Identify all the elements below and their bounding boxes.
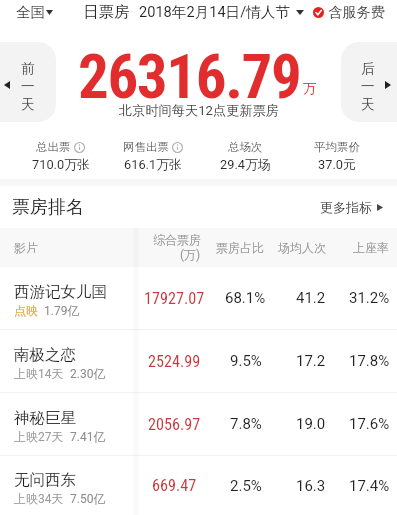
staticText: 41.2	[296, 289, 326, 307]
staticText: 场均人次	[278, 240, 326, 255]
staticText: 天	[361, 96, 375, 113]
staticText: 票房占比	[216, 240, 264, 255]
button[interactable]: 前一天	[0, 42, 56, 122]
staticText: 669.47	[152, 476, 197, 495]
staticText: 2056.97	[148, 415, 201, 434]
staticText: 17.2	[296, 352, 326, 370]
staticText: 29.4万场	[220, 157, 271, 173]
staticText: 万	[303, 80, 317, 97]
staticText: 票房排名	[12, 196, 84, 219]
staticText: 上映14天	[14, 366, 64, 381]
staticText: 17.8%	[349, 352, 390, 370]
button[interactable]: 全国	[16, 3, 53, 21]
staticText: 17.4%	[349, 477, 390, 495]
button[interactable]: 神秘巨星	[0, 393, 397, 455]
staticText: 西游记女儿国	[14, 282, 107, 302]
staticText: 无问西东	[14, 470, 76, 490]
staticText: 710.0万张	[32, 157, 90, 173]
staticText: 上座率	[353, 240, 389, 255]
staticText: 后	[361, 60, 375, 77]
button[interactable]: 网售出票	[107, 132, 199, 173]
staticText: 北京时间每天12点更新票房	[119, 102, 279, 119]
staticText: 综合票房	[153, 232, 201, 247]
button[interactable]: 南极之恋	[0, 330, 397, 392]
staticText: 7.50亿	[70, 491, 106, 506]
staticText: 616.1万张	[124, 157, 182, 173]
staticText: 1.79亿	[44, 303, 80, 318]
staticText: 19.0	[296, 415, 326, 433]
staticText: 南极之恋	[14, 345, 76, 365]
staticText: 影片	[14, 240, 38, 255]
staticText: 上映27天	[14, 429, 64, 444]
staticText: 全国	[16, 3, 45, 21]
staticText: 总出票	[36, 140, 71, 154]
staticText: 天	[21, 96, 35, 113]
button[interactable]: 平均票价	[291, 132, 383, 173]
staticText: 9.5%	[230, 352, 262, 370]
staticText: 平均票价	[314, 140, 360, 154]
button[interactable]: 2018年2月14日/情人节	[139, 3, 304, 21]
staticText: 一	[21, 78, 35, 95]
button[interactable]: 日票房	[83, 2, 130, 22]
staticText: 2.5%	[230, 477, 262, 495]
staticText: 网售出票	[123, 140, 169, 154]
staticText: 7.8%	[230, 415, 262, 433]
staticText: 总场次	[228, 140, 263, 154]
staticText: 更多指标	[320, 199, 372, 215]
staticText: 7.41亿	[70, 429, 106, 444]
staticText: 17.6%	[349, 415, 390, 433]
staticText: 一	[361, 78, 375, 95]
button[interactable]: 后一天	[341, 42, 397, 122]
button[interactable]: 无问西东	[0, 456, 397, 515]
button[interactable]: 总场次	[199, 132, 291, 173]
staticText: 点映	[14, 303, 38, 318]
button[interactable]: 更多指标	[320, 199, 383, 215]
staticText: 31.2%	[349, 289, 390, 307]
staticText: 2524.99	[148, 352, 201, 371]
staticText: 2.30亿	[70, 366, 106, 381]
button[interactable]: 含服务费	[313, 3, 385, 21]
staticText: 26316.79	[78, 41, 301, 112]
staticText: 前	[21, 60, 35, 77]
button[interactable]: 西游记女儿国	[0, 267, 397, 329]
other: 含服务费	[313, 7, 324, 18]
staticText: 2018年2月14日/情人节	[139, 3, 290, 21]
staticText: 含服务费	[328, 3, 385, 21]
staticText: 68.1%	[225, 289, 266, 307]
staticText: 37.0元	[318, 157, 356, 173]
staticText: (万)	[180, 247, 201, 262]
button[interactable]: 总出票	[14, 132, 107, 173]
staticText: 16.3	[296, 477, 326, 495]
staticText: 神秘巨星	[14, 408, 76, 428]
staticText: 上映34天	[14, 491, 64, 506]
staticText: 17927.07	[144, 289, 205, 308]
